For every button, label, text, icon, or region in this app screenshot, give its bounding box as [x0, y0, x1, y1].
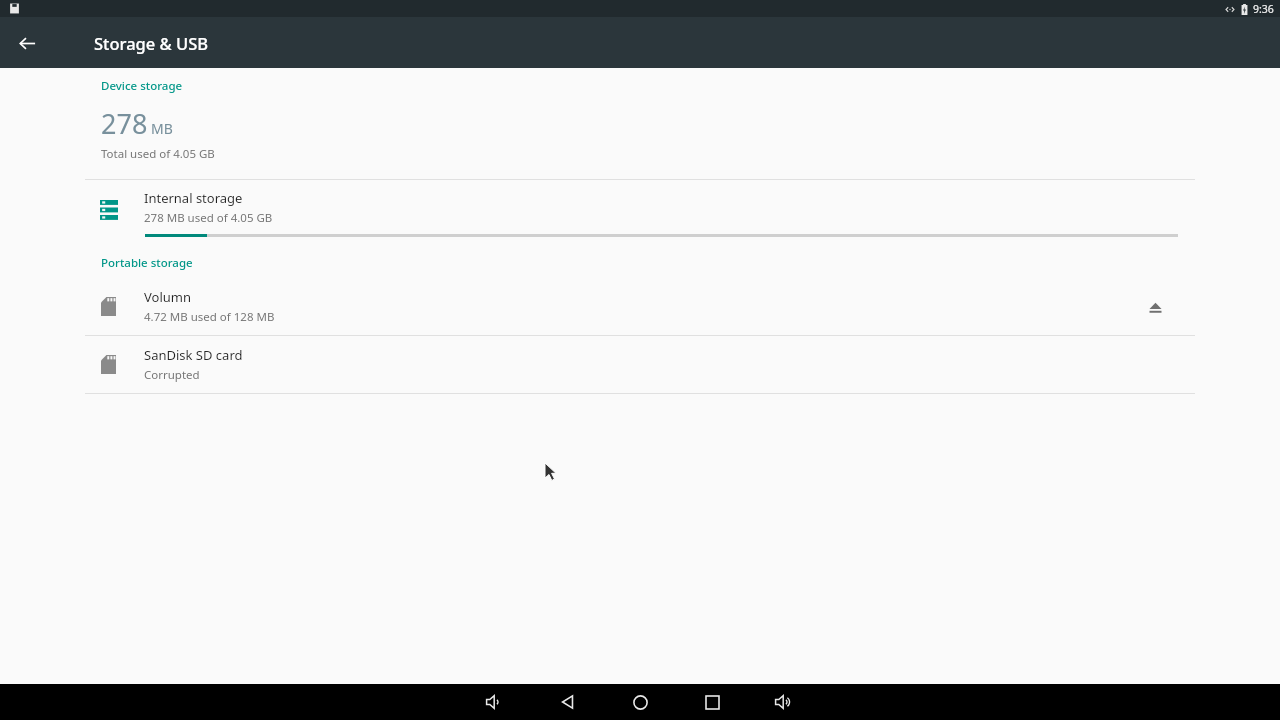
staticText: 9:36	[1253, 2, 1274, 16]
staticText: 278 MB used of 4.05 GB	[144, 210, 273, 226]
button[interactable]: Volumn	[0, 278, 1280, 335]
button[interactable]: Internal storage	[0, 180, 1280, 240]
staticText: Corrupted	[144, 367, 200, 383]
staticText: Total used of 4.05 GB	[101, 146, 215, 162]
staticText: Storage & USB	[94, 32, 209, 54]
button[interactable]: Volume down	[473, 684, 517, 720]
staticText: Internal storage	[144, 189, 243, 207]
staticText: 4.72 MB used of 128 MB	[144, 309, 275, 325]
staticText: 278 MB	[101, 105, 173, 142]
staticText: Volumn	[144, 288, 191, 306]
staticText: Portable storage	[101, 255, 193, 271]
button[interactable]: Volume up	[762, 684, 806, 720]
button[interactable]: Eject	[1134, 286, 1176, 328]
button[interactable]: SanDisk SD card	[0, 336, 1280, 393]
button[interactable]: Back	[6, 22, 48, 64]
button[interactable]: Recent apps	[690, 684, 734, 720]
staticText: Device storage	[101, 78, 183, 94]
button[interactable]: Back	[546, 684, 590, 720]
button[interactable]: Home	[618, 684, 662, 720]
staticText: SanDisk SD card	[144, 346, 243, 364]
